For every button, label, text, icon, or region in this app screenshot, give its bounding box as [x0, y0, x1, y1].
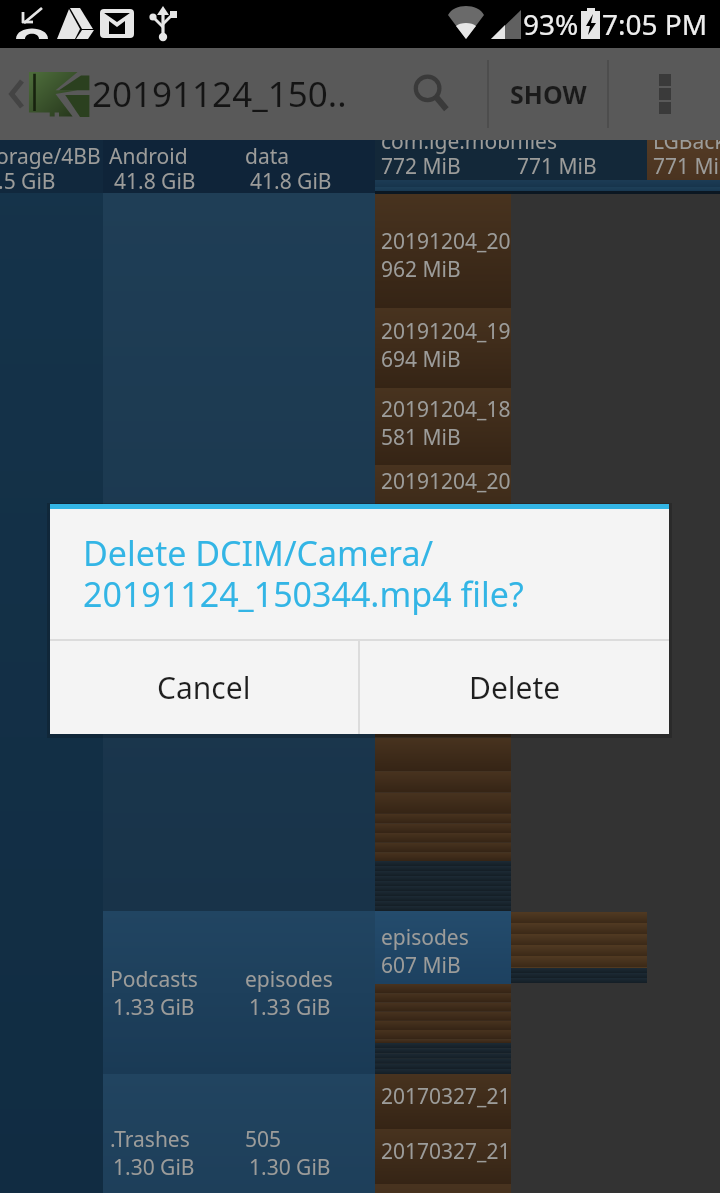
staticText: Delete DCIM/Camera/ 20191124_150344.mp4 … [83, 530, 524, 617]
staticText: Android [109, 142, 188, 171]
staticText: 20170327_21 [381, 1082, 511, 1111]
staticText: .Trashes [110, 1125, 190, 1154]
staticText: 20191204_20 [381, 467, 511, 496]
staticText: 505 [245, 1125, 282, 1154]
button[interactable]: Delete [360, 641, 669, 734]
button[interactable]: Cancel [50, 641, 358, 734]
staticText: episodes [381, 923, 469, 952]
staticText: 1.33 GiB [113, 993, 195, 1022]
staticText: files [517, 127, 557, 156]
staticText: 7:05 PM [602, 5, 708, 43]
staticText: 1.30 GiB [113, 1153, 195, 1182]
staticText: 771 MiB [653, 152, 720, 181]
staticText: 20191124_150.. [92, 70, 347, 118]
staticText: 20170327_21 [381, 1137, 511, 1166]
staticText: 41.8 GiB [114, 167, 196, 196]
staticText: 41.8 GiB [250, 167, 332, 196]
staticText: 771 MiB [517, 152, 597, 181]
staticText: 93% [523, 5, 579, 43]
staticText: 772 MiB [381, 152, 461, 181]
staticText: Podcasts [110, 965, 198, 994]
staticText: 20191204_18 [381, 395, 511, 424]
staticText: Cancel [157, 667, 251, 708]
staticText: 20191204_20 [381, 227, 511, 256]
staticText: LGBack [653, 127, 720, 156]
staticText: 20191204_19 [381, 317, 511, 346]
staticText: 1.30 GiB [249, 1153, 331, 1182]
staticText: 1.33 GiB [249, 993, 331, 1022]
button[interactable]: SHOW [489, 48, 607, 140]
staticText: 607 MiB [381, 951, 461, 980]
staticText: 694 MiB [381, 345, 461, 374]
staticText: 962 MiB [381, 255, 461, 284]
button[interactable]: More options [609, 48, 720, 140]
button[interactable]: Search [377, 48, 487, 140]
staticText: data [245, 142, 290, 171]
staticText: 581 MiB [381, 423, 461, 452]
staticText: SHOW [510, 77, 587, 111]
staticText: Delete [469, 667, 561, 708]
button[interactable]: Navigate up [0, 48, 90, 140]
staticText: com.ige.mobi [381, 127, 516, 156]
staticText: orage/4BB [0, 142, 101, 171]
staticText: .5 GiB [0, 167, 56, 196]
staticText: episodes [245, 965, 333, 994]
